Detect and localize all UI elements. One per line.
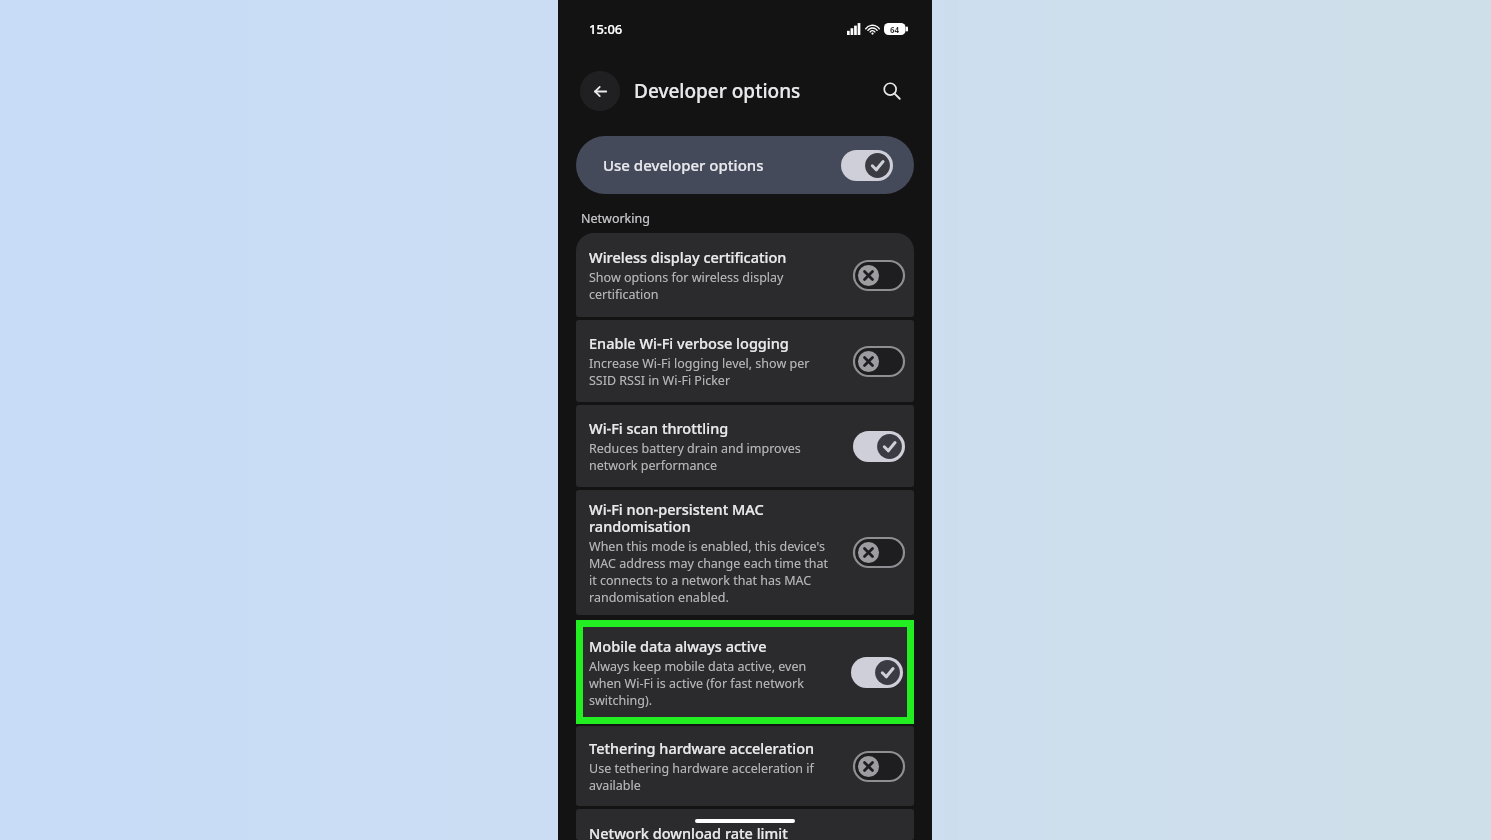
staticText: When this mode is enabled, this device's… bbox=[589, 538, 829, 606]
staticText: Use tethering hardware acceleration if a… bbox=[589, 760, 814, 794]
button[interactable]: Toggle off bbox=[853, 537, 905, 568]
staticText: Wi-Fi scan throttling bbox=[589, 418, 729, 438]
staticText: Developer options bbox=[634, 78, 874, 104]
button[interactable]: Tethering hardware acceleration bbox=[576, 726, 914, 806]
button[interactable]: Mobile data always active bbox=[583, 627, 907, 717]
button[interactable]: Wi-Fi non-persistent MAC randomisation bbox=[576, 490, 914, 615]
staticText: Increase Wi-Fi logging level, show per S… bbox=[589, 355, 810, 389]
button[interactable]: Search bbox=[874, 73, 910, 109]
button[interactable]: Back bbox=[580, 71, 620, 111]
staticText: Network download rate limit bbox=[589, 823, 788, 840]
button[interactable]: Toggle on bbox=[851, 657, 903, 688]
staticText: Enable Wi-Fi verbose logging bbox=[589, 333, 789, 353]
button[interactable]: Toggle off bbox=[853, 260, 905, 291]
button[interactable]: Toggle off bbox=[853, 751, 905, 782]
button[interactable]: Wireless display certification bbox=[576, 233, 914, 317]
button[interactable]: Enable Wi-Fi verbose logging bbox=[576, 320, 914, 402]
button[interactable]: Toggle on bbox=[853, 431, 905, 462]
staticText: Wi-Fi non-persistent MAC randomisation bbox=[589, 499, 764, 536]
staticText: Tethering hardware acceleration bbox=[589, 738, 815, 758]
staticText: 15:06 bbox=[589, 20, 623, 38]
staticText: Always keep mobile data active, even whe… bbox=[589, 658, 807, 709]
staticText: 64 bbox=[890, 24, 900, 35]
button[interactable]: Wi-Fi scan throttling bbox=[576, 405, 914, 487]
staticText: Networking bbox=[581, 210, 650, 227]
button[interactable]: Toggle off bbox=[853, 346, 905, 377]
button[interactable]: Toggle on bbox=[841, 150, 893, 181]
staticText: Show options for wireless display certif… bbox=[589, 269, 784, 303]
button[interactable]: Use developer options bbox=[576, 136, 914, 194]
staticText: Mobile data always active bbox=[589, 636, 767, 656]
staticText: Use developer options bbox=[603, 155, 764, 175]
staticText: Reduces battery drain and improves netwo… bbox=[589, 440, 801, 474]
staticText: Wireless display certification bbox=[589, 247, 787, 267]
button[interactable]: Network download rate limit bbox=[576, 809, 914, 840]
